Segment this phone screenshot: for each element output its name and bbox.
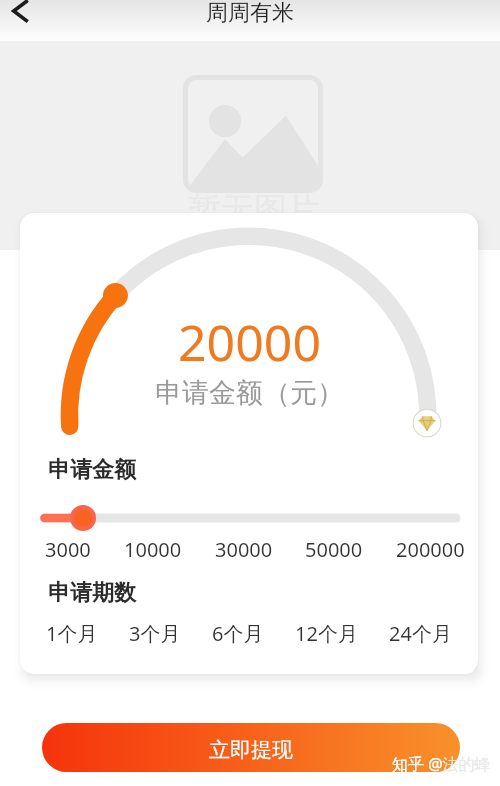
staticText: 200000 [396, 536, 465, 563]
staticText: 申请金额 [48, 456, 136, 484]
button[interactable]: 12个月 [295, 620, 358, 647]
staticText: 12个月 [295, 620, 358, 647]
staticText: 6个月 [212, 620, 264, 647]
staticText: 申请期数 [48, 579, 136, 607]
button[interactable] [20, 505, 478, 531]
button[interactable]: 24个月 [389, 620, 452, 647]
staticText: 24个月 [389, 620, 452, 647]
staticText: 20000 [178, 308, 321, 376]
staticText: 10000 [124, 536, 182, 563]
button[interactable]: 6个月 [212, 620, 264, 647]
staticText: 3000 [45, 536, 91, 563]
staticText: 1个月 [46, 620, 98, 647]
button[interactable]: 1个月 [46, 620, 98, 647]
staticText: 知乎 @法的蜂 [392, 753, 458, 777]
button[interactable]: 立即提现 [42, 723, 460, 772]
staticText: 3个月 [129, 620, 181, 647]
staticText: 50000 [305, 536, 363, 563]
staticText: 暂无图片 [188, 189, 320, 231]
staticText: 知乎 @法的蜂 [392, 753, 491, 775]
staticText: 立即提现 [209, 737, 293, 763]
staticText: 申请金额（元） [155, 376, 344, 410]
button[interactable]: 3个月 [129, 620, 181, 647]
staticText: 周周有米 [206, 0, 294, 27]
button[interactable]: Back [2, 0, 38, 29]
staticText: 30000 [215, 536, 273, 563]
